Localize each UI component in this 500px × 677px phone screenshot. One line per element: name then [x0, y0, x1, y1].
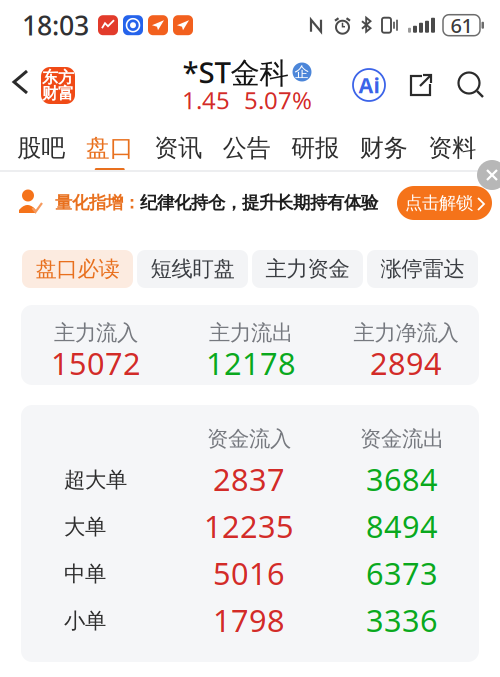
staticText: 企: [294, 63, 309, 81]
staticText: 资金流出: [360, 426, 444, 452]
button[interactable]: 资料: [418, 135, 486, 185]
button[interactable]: 研报: [281, 135, 349, 185]
staticText: 资金流入: [207, 426, 291, 452]
staticText: 小单: [64, 608, 106, 634]
staticText: 2837: [213, 459, 285, 499]
button[interactable]: Share: [406, 70, 436, 100]
staticText: 18:03: [22, 7, 89, 43]
staticText: 5.07%: [244, 84, 312, 116]
staticText: 主力流入: [54, 320, 138, 346]
button[interactable]: 财务: [349, 135, 418, 185]
staticText: 15072: [51, 343, 141, 383]
staticText: *ST金科: [182, 52, 288, 91]
staticText: 研报: [291, 133, 339, 163]
staticText: 股吧: [17, 133, 65, 163]
staticText: Ai: [358, 71, 379, 99]
staticText: 点击解锁: [405, 192, 473, 214]
button[interactable]: Close ad: [477, 160, 500, 190]
staticText: 中单: [64, 561, 106, 587]
button[interactable]: 主力资金: [252, 250, 363, 288]
button[interactable]: 公告: [212, 135, 281, 185]
staticText: 财务: [360, 133, 408, 163]
button[interactable]: 股吧: [7, 135, 75, 185]
staticText: 12178: [206, 343, 296, 383]
staticText: 短线盯盘: [150, 256, 234, 282]
button[interactable]: 盘口: [75, 135, 144, 185]
staticText: 公告: [223, 133, 271, 163]
staticText: 3684: [366, 459, 438, 499]
staticText: 财富: [42, 84, 74, 103]
button[interactable]: 资讯: [144, 135, 212, 185]
staticText: 量化指增：: [55, 192, 140, 213]
staticText: 2894: [370, 343, 442, 383]
staticText: 1798: [213, 600, 285, 640]
button[interactable]: 涨停雷达: [367, 250, 478, 288]
staticText: 资料: [428, 133, 476, 163]
staticText: 盘口: [86, 133, 134, 163]
staticText: 主力资金: [265, 256, 349, 282]
button[interactable]: East Money home: [41, 67, 75, 104]
staticText: 1.45: [182, 84, 230, 116]
button[interactable]: 短线盯盘: [137, 250, 248, 288]
staticText: 8494: [366, 506, 438, 546]
staticText: 6373: [366, 553, 438, 593]
button[interactable]: Back: [2, 58, 36, 104]
staticText: 61: [450, 12, 472, 38]
staticText: 3336: [366, 600, 438, 640]
staticText: 超大单: [64, 467, 127, 493]
staticText: 5016: [213, 553, 285, 593]
button[interactable]: AI assistant: [353, 69, 385, 101]
button[interactable]: 盘口必读: [22, 250, 133, 288]
staticText: 东方: [42, 68, 74, 87]
staticText: 资讯: [154, 133, 202, 163]
staticText: 纪律化持仓，提升长期持有体验: [140, 192, 378, 213]
staticText: 大单: [64, 514, 106, 540]
button[interactable]: Search: [456, 70, 486, 100]
staticText: 涨停雷达: [380, 256, 464, 282]
staticText: 主力净流入: [353, 320, 458, 346]
button[interactable]: 点击解锁: [397, 186, 492, 220]
staticText: 主力流出: [209, 320, 293, 346]
staticText: 12235: [204, 506, 294, 546]
staticText: 盘口必读: [35, 256, 119, 282]
